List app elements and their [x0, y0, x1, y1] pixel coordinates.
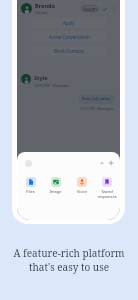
button[interactable]: Active Conversation — [31, 31, 107, 42]
staticText: Style — [34, 74, 48, 81]
button[interactable]: Add attachment — [108, 160, 114, 166]
button[interactable]: Block Contacts — [31, 45, 107, 56]
staticText: Image — [49, 189, 62, 194]
button[interactable]: Collapse — [99, 160, 105, 166]
button[interactable]: Apply — [31, 17, 107, 28]
button[interactable]: Emoji — [25, 160, 32, 167]
staticText: Brenda — [35, 2, 55, 10]
staticText: Files — [26, 189, 35, 194]
staticText: Apply — [63, 20, 75, 26]
staticText: Your full name — [82, 96, 111, 102]
staticText: Assign — [83, 6, 97, 12]
button[interactable]: Assign — [81, 5, 99, 12]
button[interactable]: Image — [44, 177, 67, 194]
staticText: Active Conversation — [49, 34, 90, 40]
staticText: Saved responses — [97, 189, 117, 199]
button[interactable]: Files — [19, 177, 42, 194]
button[interactable]: More options — [111, 6, 117, 12]
button[interactable]: Mark done — [102, 6, 108, 12]
staticText: 12:10 PM · Messages — [80, 106, 114, 111]
button[interactable]: Saved responses — [95, 177, 118, 199]
staticText: Online — [35, 10, 48, 15]
button[interactable]: Voice — [70, 177, 93, 194]
staticText: Voice — [77, 189, 87, 194]
staticText: Block Contacts — [54, 48, 85, 54]
staticText: 12:09 PM · Messages — [34, 83, 70, 88]
staticText: A feature-rich platform that's easy to u… — [13, 246, 125, 274]
